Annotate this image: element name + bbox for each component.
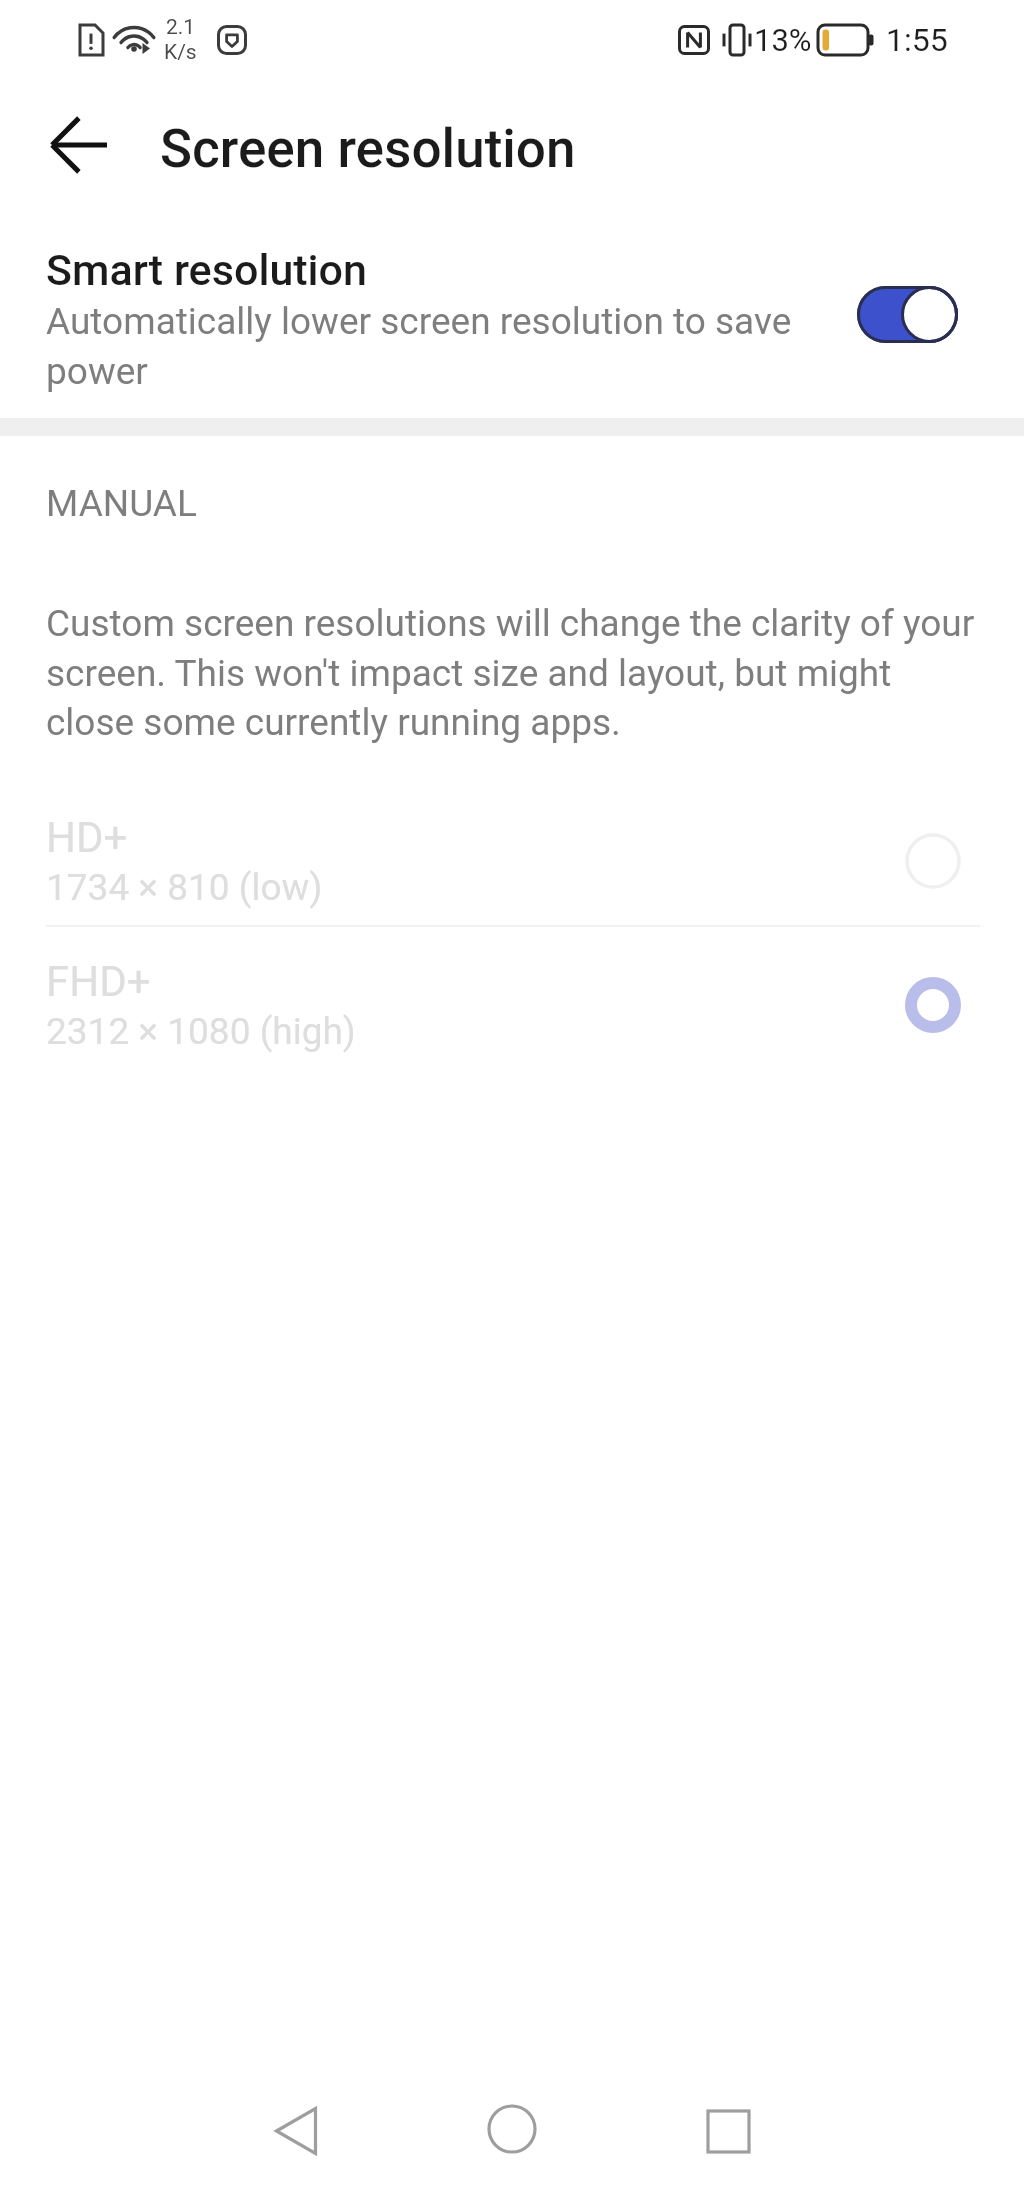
button[interactable]: Recent apps [663, 2068, 793, 2191]
staticText: MANUAL [46, 482, 197, 525]
staticText: 13% [754, 22, 812, 58]
staticText: HD+ [46, 813, 128, 862]
staticText: Custom screen resolutions will change th… [46, 602, 986, 744]
staticText: 1:55 [886, 21, 948, 59]
staticText: Smart resolution [46, 245, 367, 295]
button[interactable]: FHD+ [0, 944, 1024, 1069]
staticText: K/s [164, 40, 197, 65]
staticText: FHD+ [46, 957, 151, 1006]
staticText: 2312 × 1080 (high) [46, 1010, 356, 1053]
button[interactable]: Back [231, 2068, 361, 2191]
button[interactable]: Home [447, 2066, 577, 2191]
button[interactable]: Smart resolution toggle [857, 286, 958, 343]
button[interactable]: Back [24, 90, 134, 200]
staticText: Screen resolution [160, 118, 576, 180]
staticText: 1734 × 810 (low) [46, 866, 323, 909]
button[interactable]: HD+ [0, 800, 1024, 925]
button[interactable]: Smart resolution [0, 204, 1024, 418]
staticText: 2.1 [166, 15, 196, 40]
staticText: Automatically lower screen resolution to… [46, 300, 806, 393]
